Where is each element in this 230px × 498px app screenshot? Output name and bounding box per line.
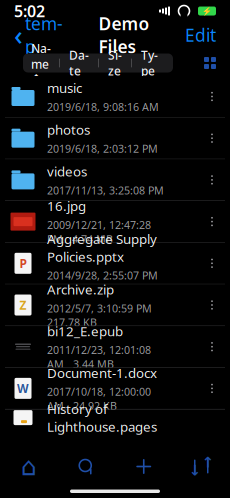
button[interactable]: Edit	[179, 22, 222, 48]
button[interactable]: photos	[0, 118, 230, 159]
button[interactable]: Name↑	[23, 53, 59, 72]
button[interactable]: 16.jpg	[0, 201, 230, 243]
staticText: 2019/6/18, 9:08:16 AM	[47, 100, 159, 114]
button[interactable]: Sort	[172, 449, 230, 483]
staticText: photos	[47, 121, 90, 138]
staticText: W	[17, 380, 29, 396]
staticText: 2014/9/28, 2:55:07 PM 210.43 KB	[47, 268, 164, 297]
staticText: 2012/5/7, 3:10:59 PM 217.78 KB	[47, 301, 158, 329]
staticText: Date	[69, 47, 89, 79]
staticText: P	[19, 255, 26, 271]
button[interactable]: bi12_E.epub	[0, 326, 230, 368]
staticText: ‹	[14, 17, 23, 53]
staticText: 2017/10/18, 12:00:00 AM 24.92 KB	[47, 385, 151, 413]
staticText: Type	[141, 47, 158, 79]
staticText: ↑	[202, 454, 214, 471]
button[interactable]: W	[0, 368, 230, 410]
button[interactable]: Size	[99, 53, 131, 72]
button[interactable]: P	[0, 243, 230, 284]
staticText: 5:02	[14, 0, 45, 22]
button[interactable]: Home	[0, 449, 57, 483]
staticText: Aggregate Supply Policies.pptx	[47, 230, 157, 265]
staticText: music	[47, 79, 82, 97]
staticText: Edit	[185, 23, 216, 46]
button[interactable]: ‹	[8, 22, 69, 48]
staticText: Name↑	[31, 40, 51, 86]
button[interactable]: Search	[57, 449, 115, 483]
staticText: 2017/11/13, 3:25:08 PM	[47, 183, 164, 197]
staticText: videos	[47, 162, 87, 180]
staticText: 2019/6/18, 2:03:12 PM	[47, 141, 158, 156]
staticText: ⚡	[202, 6, 212, 15]
staticText: 2009/12/21, 12:47:28 PM 4.74 MB	[47, 218, 151, 246]
staticText: ⌂	[21, 452, 37, 481]
staticText: 2011/12/23, 12:01:08 AM 3.44 MB	[47, 343, 151, 371]
staticText: bi12_E.epub	[47, 322, 123, 340]
button[interactable]: Type	[132, 53, 167, 72]
staticText: Z	[19, 297, 26, 313]
button[interactable]: Date	[60, 53, 98, 72]
staticText: History of Lighthouse.pages	[47, 400, 157, 435]
staticText: temp	[25, 12, 63, 58]
button[interactable]: Grid view	[196, 51, 224, 75]
button[interactable]: music	[0, 76, 230, 118]
staticText: 16.jpg	[47, 197, 86, 215]
button[interactable]: Add	[115, 449, 172, 483]
staticText: ↓	[189, 462, 201, 479]
staticText: Demo Files	[98, 12, 149, 58]
staticText: Document-1.docx	[47, 364, 157, 382]
staticText: Size	[108, 47, 122, 79]
button[interactable]: videos	[0, 159, 230, 201]
staticText: Archive.zip	[47, 280, 114, 298]
button[interactable]: Z	[0, 284, 230, 326]
